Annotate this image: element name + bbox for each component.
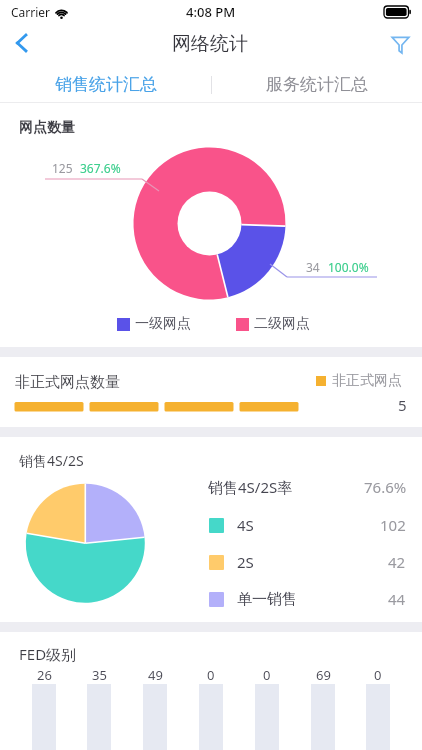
- staticText: 49: [148, 666, 163, 684]
- staticText: FED级别: [19, 644, 77, 664]
- staticText: 二级网点: [254, 315, 310, 333]
- staticText: 69: [316, 666, 331, 684]
- staticText: 网点数量: [19, 119, 75, 137]
- button[interactable]: Filter: [378, 24, 422, 62]
- staticText: 一级网点: [135, 315, 191, 333]
- staticText: 125: [52, 160, 73, 176]
- staticText: 非正式网点数量: [15, 373, 120, 392]
- staticText: 42: [388, 552, 406, 572]
- button[interactable]: 服务统计汇总: [211, 64, 422, 105]
- staticText: 销售4S/2S率: [208, 477, 293, 497]
- staticText: 0: [263, 666, 271, 684]
- staticText: 34: [306, 259, 320, 275]
- staticText: 100.0%: [328, 259, 369, 275]
- staticText: 2S: [237, 552, 254, 572]
- staticText: 26: [37, 666, 52, 684]
- staticText: 4:08 PM: [186, 3, 236, 21]
- staticText: 0: [374, 666, 382, 684]
- staticText: 44: [388, 589, 406, 609]
- staticText: 76.6%: [364, 477, 407, 497]
- button[interactable]: 销售统计汇总: [0, 64, 211, 105]
- staticText: 367.6%: [80, 160, 121, 176]
- staticText: 销售统计汇总: [55, 74, 157, 95]
- staticText: 非正式网点: [332, 372, 402, 390]
- staticText: 102: [380, 515, 406, 535]
- staticText: 单一销售: [237, 590, 297, 609]
- staticText: Carrier: [11, 4, 51, 20]
- staticText: 销售4S/2S: [19, 451, 84, 470]
- button[interactable]: Back: [0, 24, 44, 62]
- staticText: 4S: [237, 515, 254, 535]
- staticText: 35: [92, 666, 107, 684]
- staticText: 网络统计: [172, 32, 248, 56]
- staticText: 服务统计汇总: [266, 74, 368, 95]
- staticText: 5: [398, 395, 407, 415]
- staticText: 0: [207, 666, 215, 684]
